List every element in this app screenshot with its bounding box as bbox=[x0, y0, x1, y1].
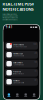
button[interactable]: Notification bbox=[5, 51, 38, 59]
staticText: now bbox=[34, 43, 37, 45]
button[interactable]: Notification bbox=[5, 60, 38, 68]
staticText: Price drop bbox=[13, 71, 21, 73]
staticText: Order shipped bbox=[13, 44, 24, 46]
staticText: deep links in one place. bbox=[2, 19, 17, 20]
staticText: 9:41 bbox=[6, 25, 13, 29]
staticText: New message bbox=[13, 53, 23, 55]
staticText: bring people back. Rich bbox=[2, 15, 18, 17]
staticText: Standup in 10 min bbox=[13, 82, 24, 84]
button[interactable]: Home bbox=[5, 92, 13, 98]
staticText: NOTIFICATIONS bbox=[2, 7, 33, 12]
button[interactable]: Notification bbox=[5, 42, 38, 50]
staticText: Arrives Thursday bbox=[13, 46, 27, 48]
button[interactable]: Analytics bbox=[21, 92, 30, 98]
button[interactable]: Notification bbox=[5, 69, 38, 77]
staticText: 1h bbox=[35, 70, 37, 72]
staticText: 3h bbox=[35, 79, 37, 81]
staticText: media, quick actions and bbox=[2, 17, 18, 19]
staticText: Daily summary bbox=[13, 62, 23, 64]
staticText: 2m bbox=[35, 52, 37, 54]
staticText: 9m bbox=[35, 61, 37, 63]
button[interactable]: Campaigns bbox=[13, 92, 21, 98]
staticText: Item back in stock bbox=[13, 73, 24, 75]
staticText: REAL-TIME PUSH bbox=[2, 1, 34, 7]
button[interactable]: Notification bbox=[5, 78, 38, 86]
staticText: 12 new signups bbox=[13, 64, 24, 66]
staticText: Reminder bbox=[13, 80, 20, 82]
button[interactable]: Settings bbox=[30, 92, 38, 98]
staticText: Deliver timely alerts that bbox=[2, 13, 16, 15]
staticText: Ana: see you at 6 bbox=[13, 55, 24, 57]
